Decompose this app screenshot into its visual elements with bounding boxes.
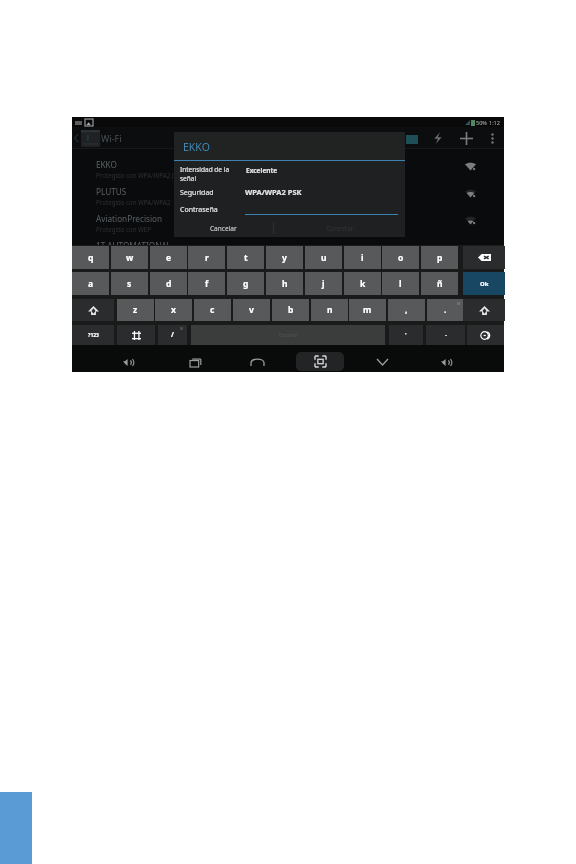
button[interactable]: d (150, 272, 187, 295)
button[interactable]: Ok (463, 272, 505, 295)
staticText: ' (405, 331, 407, 339)
button[interactable]: b (272, 299, 309, 321)
button[interactable]: ñ (421, 272, 458, 295)
button[interactable]: Cancelar (174, 219, 273, 238)
button[interactable]: Screenshot (296, 352, 344, 371)
button[interactable]: k (344, 272, 381, 295)
button[interactable]: s (111, 272, 148, 295)
button[interactable]: Shift (463, 299, 505, 321)
button[interactable]: Emoji (467, 325, 504, 345)
button[interactable]: n (311, 299, 348, 321)
staticText: u (321, 252, 327, 264)
staticText: v (249, 304, 254, 316)
button[interactable]: ?123 (72, 325, 114, 345)
staticText: 1T AUTOMATIONAL (96, 240, 171, 246)
button[interactable]: AviationPrecision (72, 212, 504, 239)
button[interactable]: h (266, 272, 303, 295)
button[interactable]: Scan (426, 127, 450, 149)
staticText: z (133, 304, 138, 316)
staticText: o (398, 252, 404, 264)
staticText: Protegida con WEP (96, 225, 152, 233)
button[interactable]: Conectar (274, 219, 405, 238)
staticText: s (127, 278, 132, 290)
staticText: Protegida con WPA/WPA2 (96, 198, 171, 206)
staticText: Conectar (326, 224, 354, 233)
button[interactable]: Shift (72, 299, 114, 321)
button[interactable]: Home (233, 352, 281, 372)
staticText: / (171, 330, 174, 340)
staticText: i (361, 252, 364, 264)
button[interactable]: y (266, 246, 303, 269)
button[interactable]: Backspace (463, 246, 505, 269)
staticText: WPA/WPA2 PSK (245, 187, 302, 197)
button[interactable]: / (158, 325, 187, 345)
button[interactable]: r (188, 246, 225, 269)
button[interactable]: Wi-Fi settings (80, 129, 100, 147)
button[interactable]: c (194, 299, 231, 321)
staticText: - (445, 331, 447, 339)
button[interactable]: - (426, 325, 465, 345)
staticText: r (205, 252, 209, 264)
button[interactable]: q (72, 246, 109, 269)
button[interactable]: m (349, 299, 386, 321)
button[interactable]: . (427, 299, 464, 321)
staticText: ñ (437, 278, 443, 290)
staticText: m (363, 304, 372, 316)
staticText: Ok (480, 280, 489, 288)
staticText: y (282, 252, 287, 264)
staticText: d (166, 278, 172, 290)
staticText: ?123 (88, 332, 99, 339)
button[interactable]: p (421, 246, 458, 269)
staticText: 50% (476, 119, 487, 126)
button[interactable]: EKKO (72, 158, 504, 185)
button[interactable]: o (382, 246, 419, 269)
other: Shift (88, 306, 99, 315)
button[interactable]: Volume up (422, 352, 470, 372)
button[interactable]: ' (389, 325, 423, 345)
button[interactable]: Add network (454, 127, 478, 149)
button[interactable]: x (155, 299, 192, 321)
button[interactable]: g (227, 272, 264, 295)
staticText: e (166, 252, 172, 264)
staticText: k (360, 278, 366, 290)
button[interactable]: More options (480, 127, 504, 149)
button[interactable]: w (111, 246, 148, 269)
button[interactable]: f (188, 272, 225, 295)
other: Shift (479, 306, 490, 315)
button[interactable]: e (150, 246, 187, 269)
staticText: Contraseña (180, 205, 218, 215)
staticText: EKKO (96, 159, 117, 170)
button[interactable]: Back (358, 352, 406, 372)
button[interactable]: Recent apps (172, 352, 220, 372)
staticText: EKKO (183, 140, 210, 154)
button[interactable]: v (233, 299, 270, 321)
button[interactable]: PLUTUS (72, 185, 504, 212)
button[interactable]: t (227, 246, 264, 269)
button[interactable]: z (117, 299, 154, 321)
button[interactable]: i (344, 246, 381, 269)
staticText: Cancelar (210, 224, 237, 233)
button[interactable]: j (305, 272, 342, 295)
staticText: w (126, 252, 134, 264)
button[interactable]: a (72, 272, 109, 295)
button[interactable]: Back (72, 128, 80, 148)
staticText: h (282, 278, 288, 290)
staticText: g (243, 278, 249, 290)
staticText: j (322, 278, 325, 290)
staticText: x (171, 304, 176, 316)
staticText: f (205, 278, 209, 290)
staticText: t (244, 252, 248, 264)
button[interactable]: , (388, 299, 425, 321)
staticText: a (88, 278, 94, 290)
staticText: q (88, 252, 94, 264)
button[interactable]: u (305, 246, 342, 269)
staticText: , (405, 304, 408, 316)
button[interactable]: Change keyboard (117, 325, 155, 345)
button[interactable]: Volume down (104, 352, 152, 372)
staticText: Intensidad de la señal (180, 165, 230, 183)
staticText: b (288, 304, 294, 316)
button[interactable]: 1T AUTOMATIONAL (72, 239, 504, 246)
staticText: Seguridad (180, 188, 214, 198)
button[interactable]: l (382, 272, 419, 295)
